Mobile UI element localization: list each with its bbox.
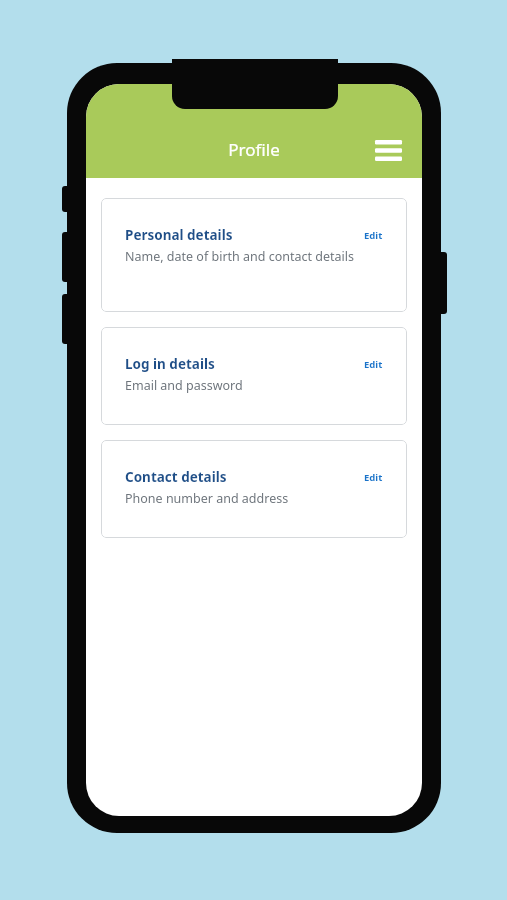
staticText: Contact details — [125, 468, 227, 486]
button[interactable]: Edit — [362, 469, 385, 486]
button[interactable]: Edit — [362, 356, 385, 373]
staticText: Edit — [364, 358, 383, 371]
button[interactable]: Edit — [362, 227, 385, 244]
staticText: Phone number and address — [125, 490, 289, 507]
staticText: Edit — [364, 229, 383, 242]
staticText: Name, date of birth and contact details — [125, 248, 354, 265]
staticText: Personal details — [125, 226, 233, 244]
button[interactable]: Personal details — [101, 198, 407, 312]
staticText: Profile — [86, 138, 422, 161]
staticText: Email and password — [125, 377, 243, 394]
staticText: Edit — [364, 471, 383, 484]
button[interactable]: Log in details — [101, 327, 407, 425]
staticText: Log in details — [125, 355, 215, 373]
button[interactable]: Menu — [370, 132, 406, 168]
button[interactable]: Contact details — [101, 440, 407, 538]
